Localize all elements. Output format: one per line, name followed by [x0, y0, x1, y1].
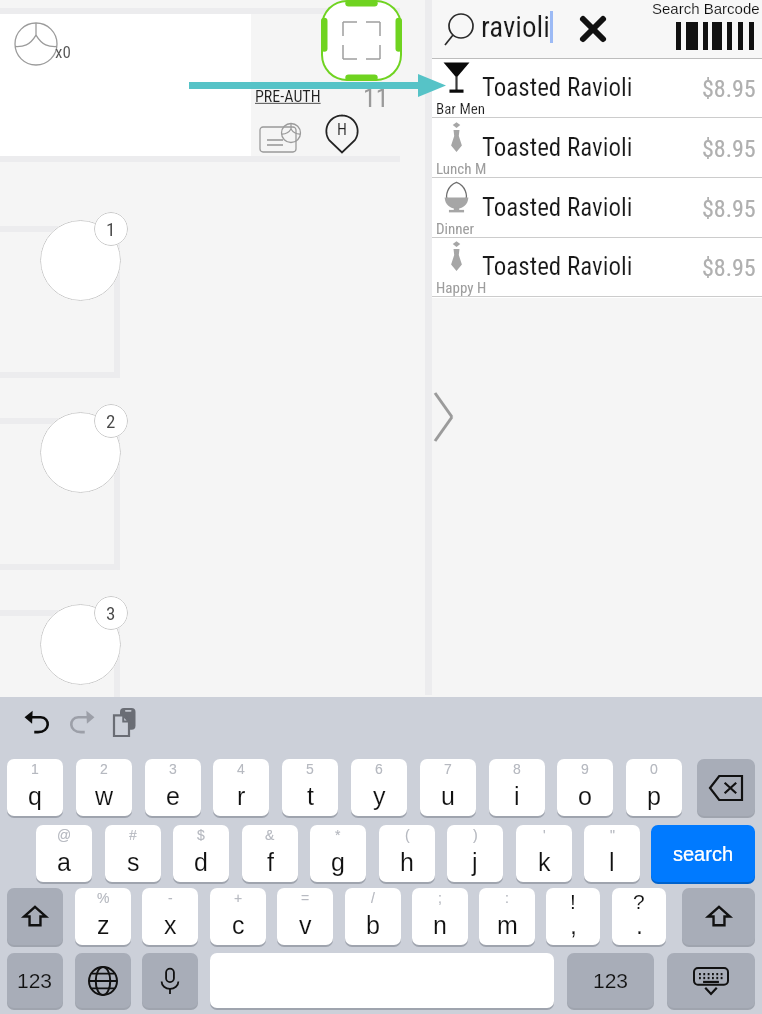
staticText: =	[301, 890, 310, 906]
button[interactable]: Shift	[7, 888, 63, 945]
staticText: 5	[306, 761, 314, 777]
staticText: $8.95	[702, 75, 756, 103]
button[interactable]: 1	[7, 759, 63, 816]
staticText: j	[472, 848, 478, 876]
staticText: z	[97, 911, 110, 939]
button[interactable]: Numbers	[7, 953, 63, 1008]
staticText: c	[232, 911, 245, 939]
button[interactable]: 5	[282, 759, 338, 816]
button[interactable]: Paste	[112, 708, 137, 736]
button[interactable]: Undo	[24, 710, 51, 734]
button[interactable]: search	[651, 825, 755, 882]
button[interactable]: Toasted Ravioli	[432, 119, 762, 178]
button[interactable]: &	[242, 825, 298, 882]
button[interactable]: 4	[213, 759, 269, 816]
button[interactable]: Change language	[75, 953, 131, 1008]
staticText: 123	[17, 969, 53, 992]
button[interactable]: 2	[76, 759, 132, 816]
button[interactable]: Toasted Ravioli	[432, 59, 762, 118]
button[interactable]: "	[584, 825, 640, 882]
button[interactable]: *	[310, 825, 366, 882]
staticText: 9	[581, 761, 589, 777]
staticText: n	[433, 911, 447, 939]
staticText: 6	[375, 761, 383, 777]
button[interactable]: 7	[420, 759, 476, 816]
staticText: (	[405, 827, 410, 843]
button[interactable]: Scan	[321, 0, 402, 81]
staticText: h	[400, 848, 414, 876]
button[interactable]: Hide keyboard	[667, 953, 755, 1008]
button[interactable]: 6	[351, 759, 407, 816]
button[interactable]: %	[75, 888, 131, 945]
button[interactable]: Redo	[68, 710, 95, 734]
button[interactable]: #	[105, 825, 161, 882]
button[interactable]: =	[277, 888, 333, 945]
button[interactable]: Location	[325, 114, 359, 154]
button[interactable]: 3	[145, 759, 201, 816]
staticText: m	[497, 911, 518, 939]
staticText: Dinner	[436, 220, 475, 238]
staticText: a	[57, 848, 71, 876]
button[interactable]: Numbers	[567, 953, 654, 1008]
button[interactable]: Expand	[434, 392, 454, 442]
staticText: Bar Men	[436, 100, 486, 118]
button[interactable]: Backspace	[697, 759, 755, 816]
button[interactable]: 8	[489, 759, 545, 816]
button[interactable]	[0, 232, 114, 372]
staticText: #	[129, 827, 137, 843]
button[interactable]: +	[210, 888, 266, 945]
button[interactable]: Toasted Ravioli	[432, 179, 762, 238]
staticText: $8.95	[702, 135, 756, 163]
button[interactable]: !	[546, 888, 600, 945]
staticText: $8.95	[702, 254, 756, 282]
staticText: ravioli	[481, 10, 550, 44]
button[interactable]: @	[36, 825, 92, 882]
staticText: 123	[593, 969, 629, 992]
button[interactable]	[0, 14, 400, 156]
button[interactable]: ?	[612, 888, 666, 945]
button[interactable]: :	[479, 888, 535, 945]
button[interactable]: $	[173, 825, 229, 882]
staticText: f	[267, 848, 274, 876]
button[interactable]: 0	[626, 759, 682, 816]
button[interactable]: Toasted Ravioli	[432, 238, 762, 297]
staticText: ;	[438, 890, 442, 906]
staticText: 3	[169, 761, 177, 777]
button[interactable]: 9	[557, 759, 613, 816]
button[interactable]	[0, 424, 114, 564]
button[interactable]: Clear	[572, 8, 614, 50]
staticText: t	[307, 782, 314, 810]
button[interactable]	[40, 412, 121, 493]
button[interactable]: )	[447, 825, 503, 882]
staticText: 1	[31, 761, 39, 777]
staticText: Search Barcode	[652, 0, 760, 17]
staticText: r	[237, 782, 246, 810]
staticText: 2	[100, 761, 108, 777]
button[interactable]: ;	[412, 888, 468, 945]
button[interactable]: -	[142, 888, 198, 945]
button[interactable]	[0, 616, 114, 756]
staticText: k	[538, 848, 551, 876]
button[interactable]: '	[516, 825, 572, 882]
staticText: H	[337, 120, 347, 139]
button[interactable]	[40, 604, 121, 685]
staticText: &	[265, 827, 275, 843]
staticText: 8	[513, 761, 521, 777]
button[interactable]: Voice input	[142, 953, 198, 1008]
staticText: y	[373, 782, 386, 810]
staticText: ?	[633, 890, 645, 913]
staticText: @	[57, 827, 72, 843]
button[interactable]: Card	[258, 120, 302, 156]
button[interactable]: Search Barcode	[650, 0, 760, 56]
button[interactable]	[40, 220, 121, 301]
staticText: Lunch M	[436, 160, 487, 178]
staticText: 1	[106, 218, 116, 240]
staticText: o	[578, 782, 592, 810]
button[interactable]: /	[345, 888, 401, 945]
button[interactable]: Seats	[14, 22, 58, 66]
staticText: d	[194, 848, 208, 876]
button[interactable]: Shift	[682, 888, 755, 945]
button[interactable]: Space	[210, 953, 554, 1008]
staticText: $	[197, 827, 205, 843]
button[interactable]: (	[379, 825, 435, 882]
